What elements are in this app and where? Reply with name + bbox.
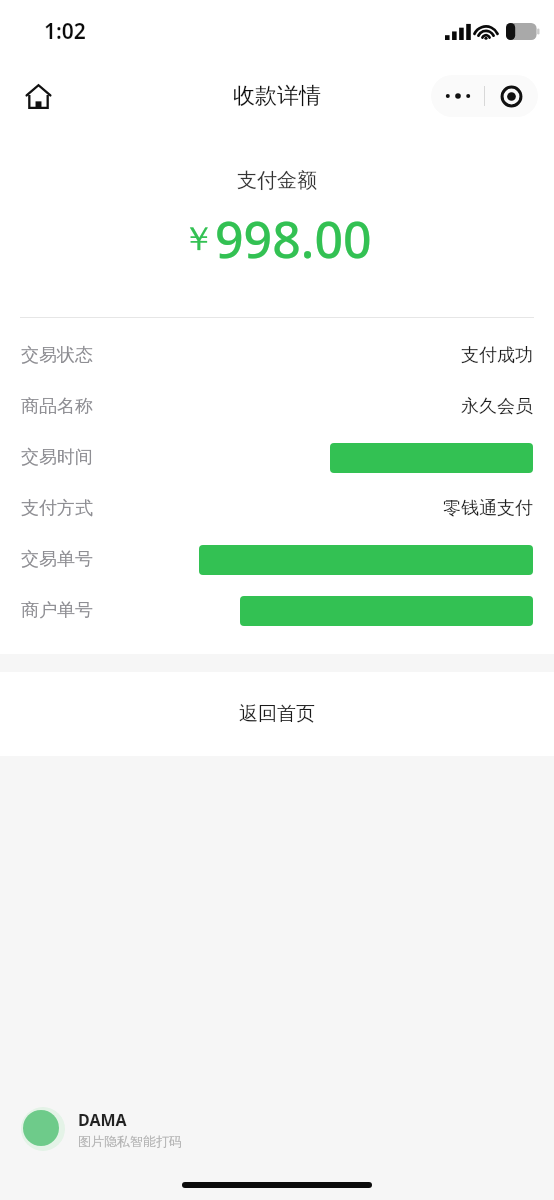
staticText: ￥ [182,218,215,260]
button[interactable]: Close [485,75,538,117]
staticText: 交易状态 [21,344,93,367]
staticText: 交易单号 [21,548,93,571]
staticText: 支付金额 [237,168,317,193]
staticText: 收款详情 [233,82,321,110]
staticText: 1:02 [44,17,86,46]
staticText: 支付方式 [21,497,93,520]
staticText: 图片隐私智能打码 [78,1133,182,1149]
staticText: 返回首页 [239,702,315,726]
staticText: 永久会员 [461,395,533,418]
staticText: 零钱通支付 [443,497,533,520]
staticText: 998.00 [215,205,372,273]
staticText: DAMA [78,1109,127,1131]
button[interactable]: Home [16,74,60,118]
button[interactable]: More options [431,75,484,117]
staticText: 支付成功 [461,344,533,367]
staticText: 商户单号 [21,599,93,622]
staticText: 商品名称 [21,395,93,418]
staticText: 交易时间 [21,446,93,469]
button[interactable]: 返回首页 [0,672,554,756]
